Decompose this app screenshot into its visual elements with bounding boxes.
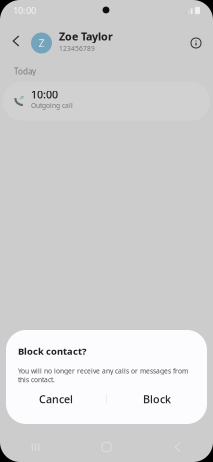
staticText: Z (38, 36, 44, 50)
staticText: Block (143, 392, 171, 406)
staticText: 10:00 (13, 4, 36, 17)
staticText: You will no longer receive any calls or … (18, 366, 188, 384)
staticText: Outgoing call (31, 101, 73, 110)
staticText: Cancel (39, 392, 73, 406)
button[interactable]: Block (107, 388, 207, 410)
staticText: Today (14, 66, 36, 77)
button[interactable]: 10:00 (3, 82, 210, 121)
button[interactable]: Contact info (187, 22, 213, 60)
staticText: 123456789 (59, 44, 95, 53)
button[interactable]: Recent apps (0, 434, 71, 460)
staticText: Block contact? (18, 345, 86, 357)
button[interactable]: Cancel (6, 388, 106, 410)
staticText: Zoe Taylor (59, 29, 113, 43)
staticText: 10:00 (31, 87, 58, 102)
button[interactable]: Back (142, 434, 213, 460)
button[interactable]: Back (0, 22, 32, 60)
